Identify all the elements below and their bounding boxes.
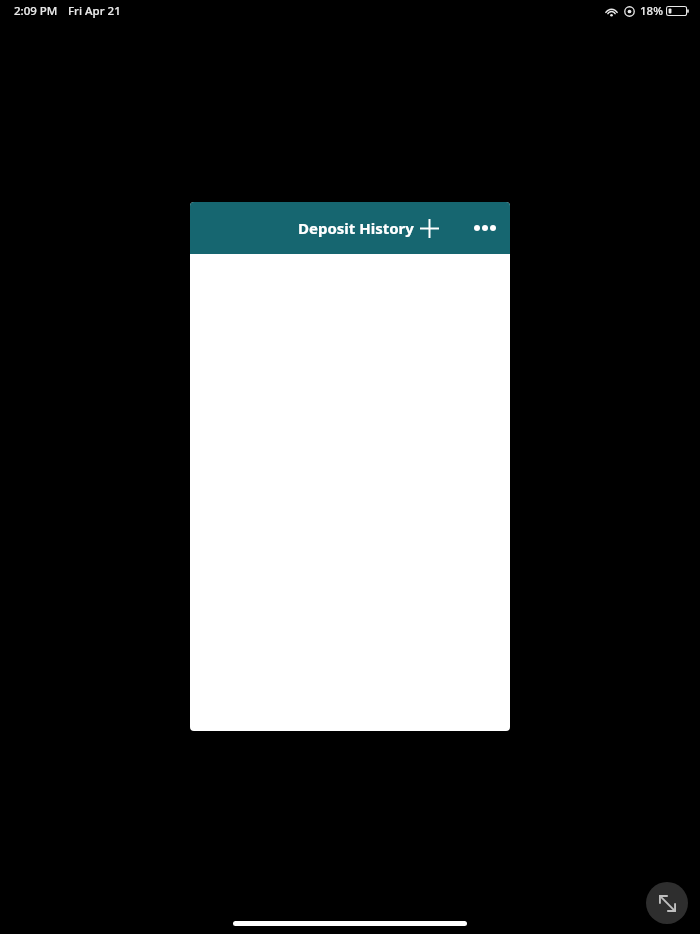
- staticText: 18%: [640, 3, 663, 19]
- button[interactable]: Expand to full screen: [646, 882, 688, 924]
- staticText: Fri Apr 21: [68, 3, 121, 19]
- staticText: 2:09 PM: [14, 3, 58, 19]
- button[interactable]: Add deposit: [415, 214, 443, 242]
- button[interactable]: More options: [471, 214, 499, 242]
- staticText: Deposit History: [298, 218, 414, 238]
